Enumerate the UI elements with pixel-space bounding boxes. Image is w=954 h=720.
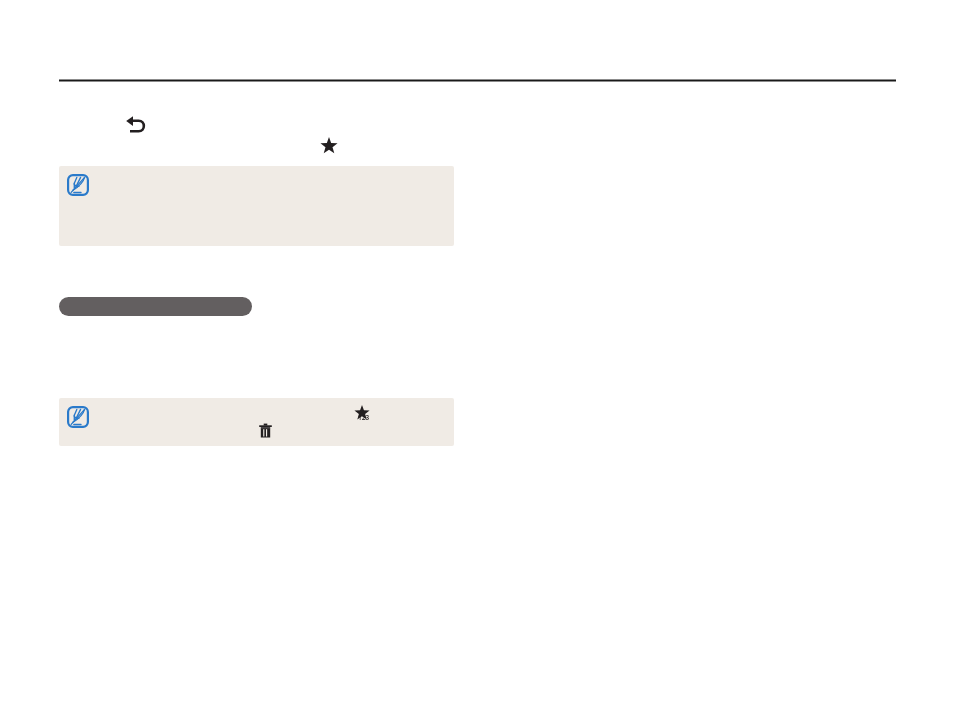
button[interactable]: Delete [59,398,454,446]
button[interactable]: Favourites count [354,405,370,421]
button[interactable]: Undo [126,116,146,133]
button[interactable]: Delete [259,423,272,438]
button[interactable]: Favourite [320,137,338,155]
button[interactable]: Section heading [59,297,252,316]
staticText: 123 [358,413,370,422]
button[interactable] [59,166,454,246]
